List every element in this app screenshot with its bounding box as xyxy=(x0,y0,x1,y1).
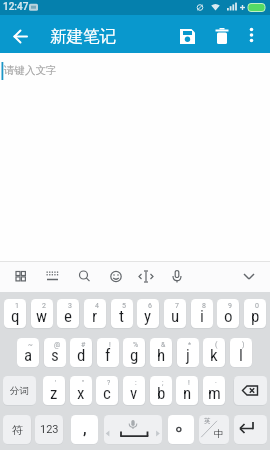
staticText: ( xyxy=(215,341,218,349)
staticText: 英 xyxy=(204,417,211,425)
staticText: f xyxy=(105,345,111,365)
staticText: h xyxy=(157,345,166,365)
staticText: t xyxy=(119,306,125,326)
staticText: " xyxy=(82,379,85,387)
staticText: 请键入文字 xyxy=(4,64,57,77)
staticText: ~ xyxy=(28,341,33,349)
staticText: 2 xyxy=(42,302,46,310)
button[interactable]: 符 xyxy=(3,415,31,444)
staticText: g xyxy=(130,345,139,365)
staticText: # xyxy=(81,341,86,349)
button[interactable]: f xyxy=(97,338,119,367)
button[interactable]: x xyxy=(70,376,92,405)
staticText: o xyxy=(224,306,233,326)
button[interactable] xyxy=(168,415,194,444)
button[interactable]: u xyxy=(164,299,186,328)
staticText: l xyxy=(239,345,243,365)
button[interactable] xyxy=(174,23,201,50)
staticText: n xyxy=(183,383,192,403)
button[interactable]: s xyxy=(44,338,66,367)
button[interactable]: k xyxy=(203,338,225,367)
staticText: ; xyxy=(162,379,164,387)
button[interactable]: 分词 xyxy=(3,376,36,405)
button[interactable]: i xyxy=(191,299,213,328)
button[interactable]: 123 xyxy=(35,415,63,444)
button[interactable]: c xyxy=(96,376,118,405)
staticText: i xyxy=(200,306,204,326)
button[interactable]: h xyxy=(150,338,172,367)
button[interactable]: d xyxy=(70,338,92,367)
staticText: 4 xyxy=(95,302,99,310)
button[interactable]: e xyxy=(57,299,79,328)
button[interactable]: p xyxy=(244,299,266,328)
button[interactable]: , xyxy=(71,415,98,444)
button[interactable]: l xyxy=(230,338,252,367)
staticText: 8 xyxy=(202,302,206,310)
staticText: 中 xyxy=(214,428,224,440)
staticText: 3 xyxy=(68,302,72,310)
button[interactable]: m xyxy=(203,376,225,405)
staticText: a xyxy=(24,345,33,365)
button[interactable]: r xyxy=(84,299,106,328)
staticText: ! xyxy=(109,341,111,349)
button[interactable] xyxy=(208,23,235,50)
staticText: 9 xyxy=(228,302,232,310)
staticText: b xyxy=(157,383,166,403)
staticText: @ xyxy=(54,341,61,349)
button[interactable]: w xyxy=(31,299,53,328)
staticText: p xyxy=(251,306,260,326)
staticText: ? xyxy=(107,379,111,387)
staticText: ' xyxy=(55,379,57,387)
staticText: 6 xyxy=(148,302,152,310)
staticText: & xyxy=(161,341,166,349)
staticText: , xyxy=(83,420,87,438)
staticText: 5 xyxy=(122,302,126,310)
staticText: · xyxy=(215,379,217,387)
staticText: 12:47 xyxy=(3,1,29,13)
staticText: r xyxy=(92,306,98,326)
staticText: y xyxy=(144,306,152,326)
staticText: w xyxy=(36,306,48,326)
button[interactable] xyxy=(104,415,162,444)
staticText: j xyxy=(186,345,190,365)
button[interactable]: q xyxy=(4,299,26,328)
staticText: 1 xyxy=(15,302,19,310)
staticText: : xyxy=(135,379,137,387)
staticText: 新建笔记 xyxy=(50,26,116,47)
button[interactable]: o xyxy=(217,299,239,328)
button[interactable] xyxy=(234,415,267,444)
staticText: k xyxy=(210,345,218,365)
button[interactable]: y xyxy=(137,299,159,328)
button[interactable]: b xyxy=(150,376,172,405)
button[interactable]: j xyxy=(177,338,199,367)
button[interactable] xyxy=(234,376,267,405)
staticText: 分词 xyxy=(10,385,29,397)
staticText: ) xyxy=(242,341,245,349)
button[interactable] xyxy=(240,23,264,47)
button[interactable]: v xyxy=(123,376,145,405)
button[interactable]: 英 xyxy=(199,415,229,444)
staticText: v xyxy=(130,383,138,403)
staticText: u xyxy=(171,306,180,326)
staticText: 0 xyxy=(255,302,259,310)
button[interactable]: t xyxy=(111,299,133,328)
button[interactable] xyxy=(7,23,34,50)
staticText: 7 xyxy=(175,302,179,310)
staticText: 符 xyxy=(12,423,23,437)
staticText: d xyxy=(77,345,86,365)
staticText: x xyxy=(77,383,85,403)
staticText: 123 xyxy=(40,423,59,436)
staticText: z xyxy=(50,383,58,403)
button[interactable]: n xyxy=(176,376,198,405)
staticText: * xyxy=(188,341,192,349)
staticText: % xyxy=(133,341,139,349)
staticText: m xyxy=(208,383,221,403)
staticText: ! xyxy=(188,379,190,387)
staticText: e xyxy=(64,306,72,326)
staticText: s xyxy=(51,345,59,365)
button[interactable]: a xyxy=(17,338,39,367)
button[interactable]: z xyxy=(43,376,65,405)
button[interactable]: g xyxy=(123,338,145,367)
staticText: q xyxy=(11,306,20,326)
staticText: c xyxy=(103,383,111,403)
